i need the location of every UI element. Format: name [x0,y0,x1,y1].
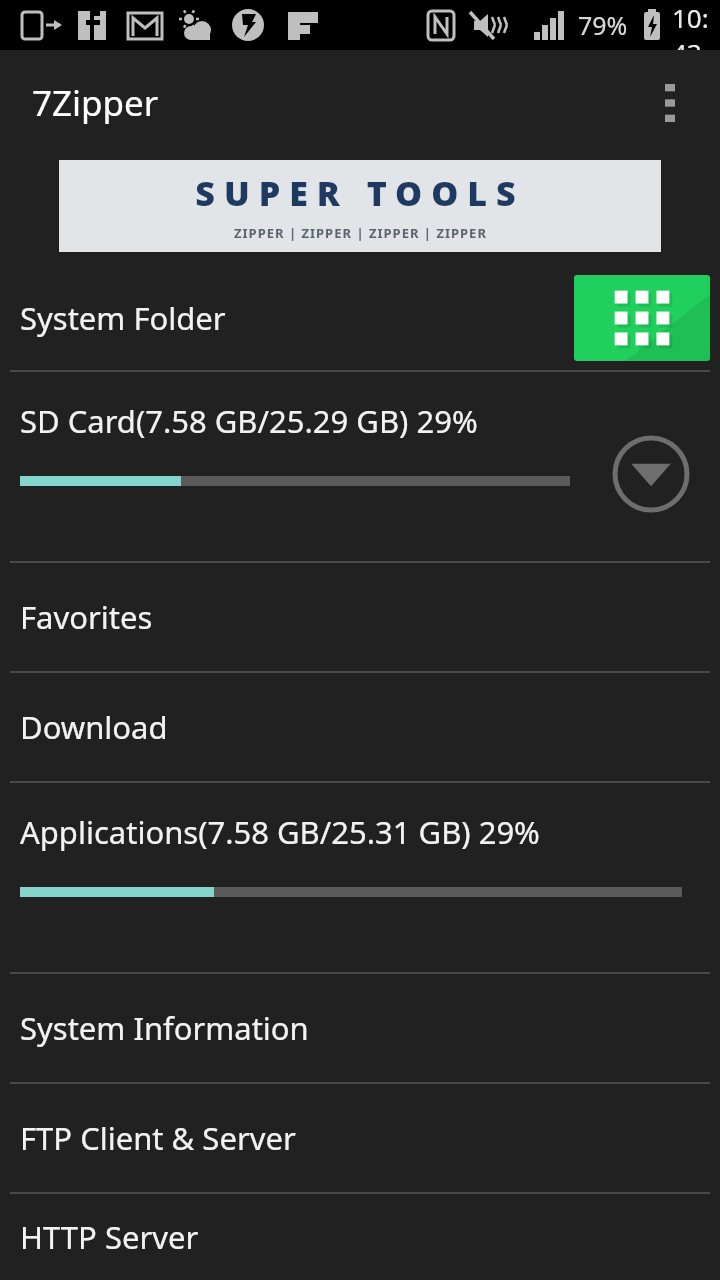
button[interactable]: FTP Client & Server [0,1084,720,1192]
staticText: SD Card(7.58 GB/25.29 GB) 29% [20,400,478,442]
staticText: 79% [578,8,628,42]
button[interactable]: System Folder [0,265,720,370]
staticText: HTTP Server [20,1216,199,1258]
button[interactable]: More options [642,75,698,131]
staticText: 10:43 [672,0,720,50]
staticText: System Folder [20,297,226,339]
staticText: Download [20,706,168,748]
button[interactable]: SUPER TOOLS [59,160,661,252]
staticText: 7Zipper [32,79,159,127]
button[interactable]: Favorites [0,563,720,671]
staticText: System Information [20,1007,309,1049]
button[interactable]: SD Card(7.58 GB/25.29 GB) 29% [0,372,720,561]
button[interactable]: HTTP Server [0,1194,720,1280]
button[interactable]: Expand [612,435,690,513]
button[interactable]: Download [0,673,720,781]
staticText: Favorites [20,596,153,638]
staticText: FTP Client & Server [20,1117,296,1159]
button[interactable]: System Information [0,974,720,1082]
staticText: Applications(7.58 GB/25.31 GB) 29% [20,811,540,853]
staticText: SUPER TOOLS [195,170,525,216]
staticText: ZIPPER | ZIPPER | ZIPPER | ZIPPER [234,224,487,242]
button[interactable]: Applications(7.58 GB/25.31 GB) 29% [0,783,720,972]
